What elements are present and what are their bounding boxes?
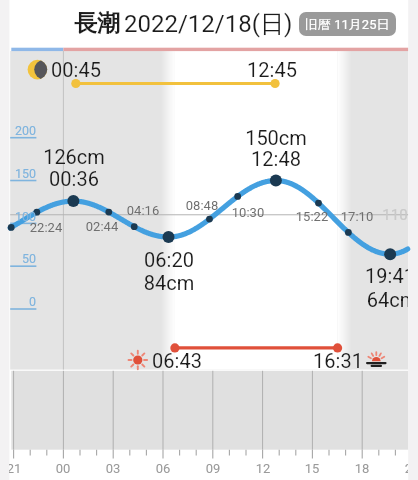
staticText: 06 (143, 461, 183, 476)
staticText: 00:36 (14, 167, 134, 190)
staticText: 09 (193, 461, 233, 476)
staticText: 12:48 (216, 147, 336, 170)
staticText: 64cm (332, 288, 408, 311)
staticText: 06:43 (117, 349, 237, 372)
staticText: 12 (243, 461, 283, 476)
staticText: 126cm (14, 145, 134, 168)
staticText: 19:41 (330, 264, 408, 287)
staticText: 02:44 (77, 219, 127, 234)
staticText: 84cm (109, 271, 229, 294)
staticText: 22:24 (21, 220, 71, 235)
staticText: 08:48 (177, 198, 227, 213)
staticText: 15:22 (287, 209, 337, 224)
button[interactable]: 長潮 (0, 0, 418, 47)
staticText: 17:10 (332, 209, 382, 224)
staticText: 200 (9, 123, 36, 138)
staticText: 100 (9, 209, 36, 224)
staticText: 21 (9, 461, 34, 476)
staticText: 長潮 (74, 9, 120, 38)
staticText: 12:45 (212, 58, 332, 81)
staticText: 16:31 (278, 349, 398, 372)
staticText: 15 (292, 461, 332, 476)
staticText: 10:30 (223, 205, 273, 220)
staticText: 50 (9, 251, 36, 266)
button[interactable]: 旧暦 11月25日 (299, 12, 396, 36)
staticText: 旧暦 11月25日 (305, 16, 390, 32)
staticText: 18 (342, 461, 382, 476)
staticText: 150 (9, 166, 36, 181)
staticText: 150cm (216, 126, 336, 149)
staticText: 2022/12/18(日) (124, 9, 293, 39)
staticText: 0 (9, 294, 36, 309)
staticText: 110 (375, 206, 408, 224)
staticText: 03 (93, 461, 133, 476)
staticText: 06:20 (109, 248, 229, 271)
staticText: 00 (43, 461, 83, 476)
staticText: 00:45 (16, 58, 136, 81)
staticText: 04:16 (118, 203, 168, 218)
staticText: 21 (392, 461, 408, 476)
